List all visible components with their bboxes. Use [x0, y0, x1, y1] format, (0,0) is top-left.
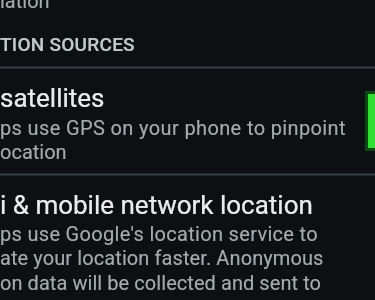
staticText: ate your location faster. Anonymous — [0, 246, 324, 269]
staticText: ps use GPS on your phone to pinpoint — [0, 116, 346, 139]
staticText: on data will be collected and sent to — [0, 271, 322, 294]
staticText: i & mobile network location — [0, 190, 313, 220]
button[interactable]: Use GPS satellites, checked — [365, 91, 375, 151]
staticText: TION SOURCES — [0, 33, 135, 55]
staticText: ocation — [0, 140, 67, 163]
button[interactable]: Wi-Fi and mobile network location — [0, 175, 375, 285]
staticText: lation — [0, 0, 50, 12]
staticText: ps use Google's location service to — [0, 222, 318, 245]
button[interactable]: Use GPS satellites — [0, 68, 375, 174]
staticText: satellites — [0, 83, 105, 113]
button[interactable]: My Location preference — [0, 0, 375, 8]
